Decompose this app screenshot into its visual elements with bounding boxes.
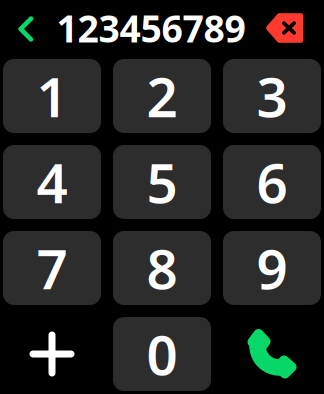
button[interactable]: 6 xyxy=(223,145,321,219)
staticText: 0 xyxy=(146,318,177,390)
staticText: 4 xyxy=(36,146,67,218)
staticText: 9 xyxy=(256,232,287,304)
staticText: 8 xyxy=(146,232,177,304)
staticText: 2 xyxy=(146,60,177,132)
button[interactable]: Call xyxy=(223,317,321,391)
staticText: 7 xyxy=(36,232,67,304)
button[interactable]: 0 xyxy=(113,317,211,391)
button[interactable]: Delete xyxy=(260,3,310,53)
staticText: 5 xyxy=(146,146,177,218)
button[interactable]: Add xyxy=(3,317,101,391)
staticText: 123456789 xyxy=(56,3,245,53)
button[interactable]: 8 xyxy=(113,231,211,305)
button[interactable]: 5 xyxy=(113,145,211,219)
button[interactable]: 1 xyxy=(3,59,101,133)
button[interactable]: 3 xyxy=(223,59,321,133)
button[interactable]: Back xyxy=(4,4,48,54)
button[interactable]: 2 xyxy=(113,59,211,133)
staticText: 3 xyxy=(256,60,287,132)
staticText: 6 xyxy=(256,146,287,218)
button[interactable]: 9 xyxy=(223,231,321,305)
button[interactable]: 7 xyxy=(3,231,101,305)
staticText: 1 xyxy=(36,60,67,132)
button[interactable]: 4 xyxy=(3,145,101,219)
